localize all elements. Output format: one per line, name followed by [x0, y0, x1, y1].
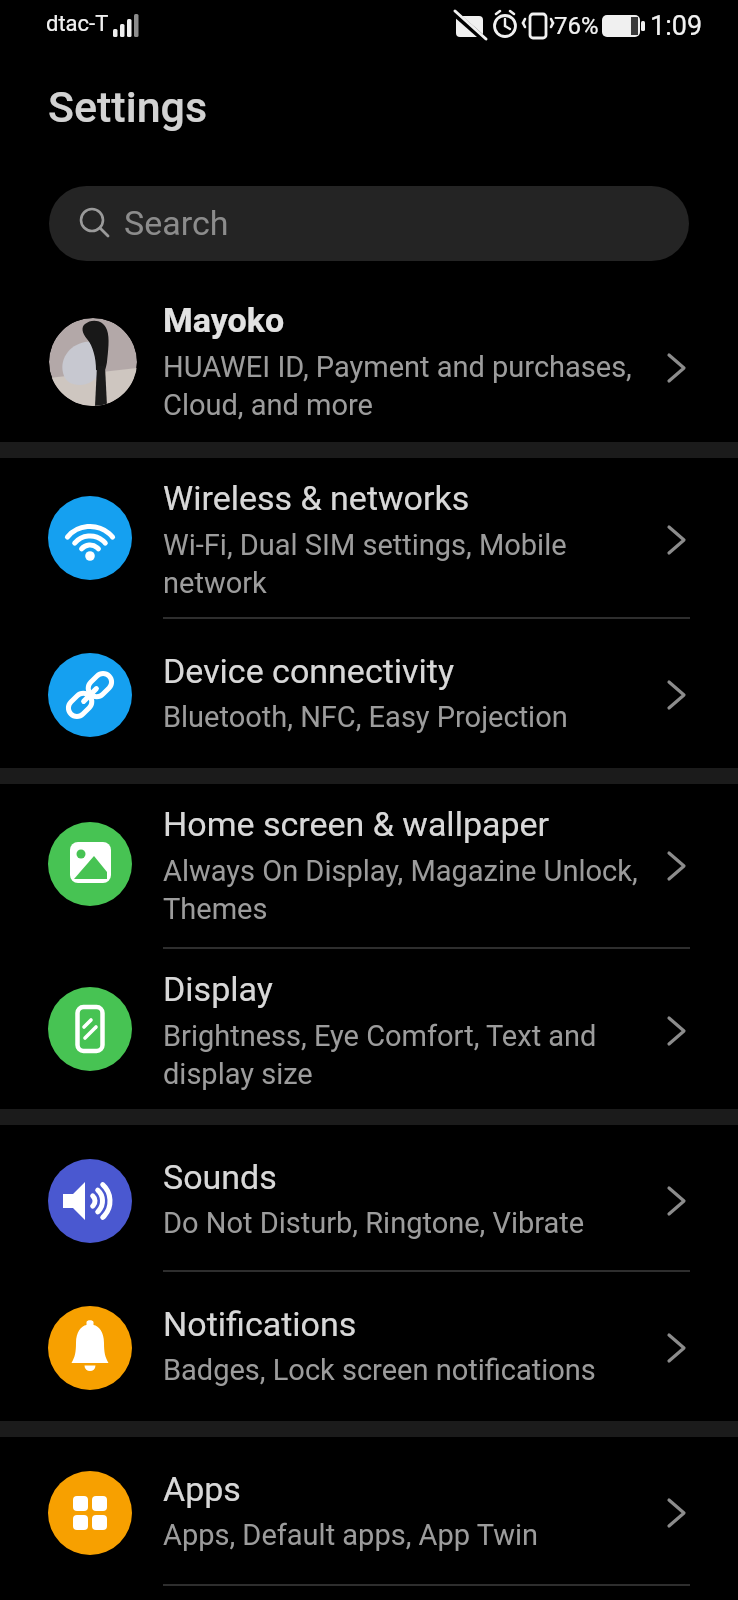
staticText: Display: [163, 969, 273, 1009]
staticText: Badges, Lock screen notifications: [163, 1353, 596, 1387]
staticText: 76%: [554, 12, 599, 40]
staticText: Wireless & networks: [163, 478, 470, 518]
staticText: 1:09: [650, 10, 703, 42]
button[interactable]: Display: [0, 949, 738, 1109]
button[interactable]: Sounds: [0, 1125, 738, 1272]
staticText: Settings: [48, 82, 208, 132]
button[interactable]: Notifications: [0, 1272, 738, 1421]
button[interactable]: Wireless & networks: [0, 458, 738, 619]
staticText: HUAWEI ID, Payment and purchases, Cloud,…: [163, 350, 632, 422]
staticText: Apps, Default apps, App Twin: [163, 1518, 539, 1552]
staticText: Search: [124, 203, 229, 243]
button[interactable]: Mayoko: [0, 286, 738, 442]
button[interactable]: Device connectivity: [0, 619, 738, 768]
staticText: Apps: [163, 1469, 241, 1509]
staticText: Home screen & wallpaper: [163, 804, 550, 844]
staticText: Device connectivity: [163, 651, 455, 691]
staticText: Notifications: [163, 1304, 357, 1344]
staticText: Wi-Fi, Dual SIM settings, Mobile network: [163, 528, 567, 600]
staticText: Do Not Disturb, Ringtone, Vibrate: [163, 1206, 585, 1240]
staticText: Brightness, Eye Comfort, Text and displa…: [163, 1019, 597, 1091]
button[interactable]: Apps: [0, 1437, 738, 1586]
staticText: Bluetooth, NFC, Easy Projection: [163, 700, 568, 734]
button[interactable]: Search: [49, 186, 689, 261]
staticText: Mayoko: [163, 300, 285, 340]
staticText: dtac-T: [46, 11, 109, 37]
staticText: Always On Display, Magazine Unlock, Them…: [163, 854, 638, 926]
button[interactable]: Home screen & wallpaper: [0, 784, 738, 949]
staticText: Sounds: [163, 1157, 277, 1197]
